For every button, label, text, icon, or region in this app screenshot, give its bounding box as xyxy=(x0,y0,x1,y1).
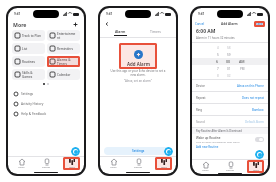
staticText: Alexa on this Phone xyxy=(237,84,264,88)
button[interactable]: Alarm xyxy=(110,28,131,37)
button[interactable]: List xyxy=(12,43,45,54)
staticText: 4 xyxy=(217,46,219,50)
staticText: Device xyxy=(196,84,205,88)
staticText: Repeat xyxy=(196,96,206,100)
button[interactable]: Device xyxy=(192,80,268,91)
button[interactable]: Alexa xyxy=(71,147,80,156)
button[interactable]: Timers xyxy=(145,28,166,37)
staticText: AM xyxy=(239,59,245,64)
staticText: Home xyxy=(18,166,25,169)
staticText: Track to Plan xyxy=(22,34,41,38)
staticText: 9:41 xyxy=(14,12,21,16)
staticText: 8 xyxy=(217,74,219,78)
button[interactable]: Settings xyxy=(8,89,84,99)
button[interactable]: More xyxy=(243,160,268,173)
staticText: 9:41 xyxy=(106,12,113,16)
button[interactable]: Devices xyxy=(126,157,151,170)
button[interactable]: Repeat xyxy=(192,92,268,103)
button[interactable]: More xyxy=(151,157,176,170)
staticText: 6 xyxy=(216,59,219,64)
staticText: Reminders xyxy=(57,47,73,51)
button[interactable]: Track to Plan xyxy=(12,30,45,41)
button[interactable]: Reminders xyxy=(47,43,80,54)
staticText: Add new Routine xyxy=(196,145,219,149)
staticText: 02 xyxy=(227,74,231,78)
staticText: 6:00 AM xyxy=(196,28,216,35)
staticText: Save xyxy=(256,22,263,26)
staticText: Cancel xyxy=(195,22,205,26)
staticText: 59 xyxy=(227,53,231,57)
staticText: Use this app or your Echo device to set … xyxy=(108,69,168,77)
staticText: PM xyxy=(240,67,245,71)
staticText: Add Alarm xyxy=(127,61,150,67)
staticText: 01 xyxy=(227,67,231,71)
staticText: Devices xyxy=(42,166,51,169)
staticText: 7 xyxy=(217,67,219,71)
button[interactable]: Save xyxy=(254,21,265,27)
staticText: More xyxy=(69,166,75,169)
staticText: More xyxy=(13,21,27,28)
staticText: Routines xyxy=(22,60,36,64)
staticText: Home xyxy=(110,166,117,169)
staticText: Alarms & Timers xyxy=(57,58,77,66)
button[interactable]: Add xyxy=(72,21,79,28)
staticText: Turn on lights and weather after alarm xyxy=(196,140,240,143)
staticText: Does not repeat xyxy=(242,96,264,100)
button[interactable]: Ring xyxy=(192,104,268,115)
button[interactable]: Devices xyxy=(218,160,243,173)
staticText: More xyxy=(253,169,259,172)
button[interactable]: Home xyxy=(8,157,34,170)
staticText: More xyxy=(161,166,167,169)
button[interactable]: Skills & Games xyxy=(12,69,45,80)
staticText: Home xyxy=(202,169,209,172)
staticText: Help & Feedback xyxy=(21,112,47,116)
staticText: Timers xyxy=(150,29,161,34)
staticText: Ring xyxy=(196,108,203,112)
staticText: Wake up Routine xyxy=(196,136,221,140)
button[interactable]: Sound xyxy=(192,116,268,127)
button[interactable]: Calendar xyxy=(47,69,80,80)
staticText: Devices xyxy=(134,166,143,169)
staticText: 9:41 xyxy=(198,12,205,16)
button[interactable]: Back xyxy=(104,21,110,27)
staticText: 5 xyxy=(217,53,219,57)
staticText: 58 xyxy=(227,46,231,50)
button[interactable]: Wake up Routine xyxy=(192,134,268,145)
button[interactable]: Entertainment xyxy=(47,30,80,41)
staticText: Add Alarm xyxy=(221,22,238,26)
staticText: Entertainment xyxy=(57,32,77,40)
staticText: List xyxy=(22,47,28,51)
staticText: Alarm xyxy=(115,29,126,34)
button[interactable]: Devices xyxy=(34,157,59,170)
button[interactable]: Settings xyxy=(104,147,172,155)
button[interactable]: Home xyxy=(100,157,126,170)
staticText: Settings xyxy=(21,92,34,96)
staticText: 00 xyxy=(226,59,231,64)
button[interactable]: Home xyxy=(192,160,218,173)
button[interactable]: Cancel xyxy=(195,22,205,26)
staticText: Calendar xyxy=(57,73,71,77)
button[interactable]: Add Alarm xyxy=(127,50,150,67)
staticText: Alarm in 11 hours 32 minutes xyxy=(196,36,235,40)
staticText: Sound xyxy=(196,120,205,124)
staticText: Default Alarm xyxy=(245,120,264,124)
button[interactable]: Alarms & Timers xyxy=(47,56,80,67)
staticText: Devices xyxy=(226,169,235,172)
staticText: Settings xyxy=(132,149,145,153)
staticText: "Alexa, set an alarm" xyxy=(124,79,152,83)
button[interactable]: Help & Feedback xyxy=(8,109,84,119)
button[interactable]: Routines xyxy=(12,56,45,67)
staticText: Pay Routine After Alarm Is Dismissed xyxy=(196,129,242,133)
staticText: Activity History xyxy=(21,102,44,106)
button[interactable]: Alexa xyxy=(255,150,264,159)
staticText: Skills & Games xyxy=(22,71,42,79)
button[interactable]: Activity History xyxy=(8,99,84,109)
staticText: Bamboo xyxy=(252,108,264,112)
button[interactable]: More xyxy=(59,157,84,170)
button[interactable]: Alexa xyxy=(164,147,173,156)
button[interactable]: Add new Routine xyxy=(196,145,219,149)
